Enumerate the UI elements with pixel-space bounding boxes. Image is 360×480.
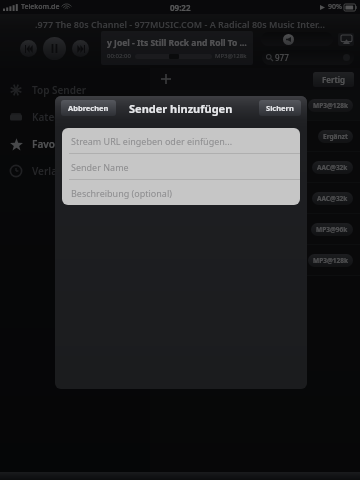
staticText <box>157 130 314 142</box>
staticText <box>157 192 308 204</box>
button[interactable]: Sender Name <box>62 154 300 179</box>
staticText: .977 The 80s Channel - 977MUSIC.COM - A … <box>35 18 325 30</box>
staticText: y Joel - Its Still Rock and Roll To Me (… <box>107 37 247 49</box>
staticText: Stream URL eingeben oder einfügen... <box>71 135 233 147</box>
staticText: MP3@96k <box>316 225 348 234</box>
staticText: Ergänzt <box>323 132 348 141</box>
staticText: .977 The 80s Channel - 977MUSIC.COM - A … <box>157 99 304 111</box>
button[interactable]: Kategorien <box>0 103 150 130</box>
staticText: MP3@128k <box>313 256 348 265</box>
button[interactable]: Ergänzt <box>150 121 360 151</box>
staticText: Beschreibung (optional) <box>71 187 172 199</box>
button[interactable]: Top Sender <box>0 76 150 103</box>
button[interactable]: .977 The 80s Channel - 977MUSIC.COM - A … <box>150 90 360 120</box>
staticText: AAC@32k <box>317 194 348 203</box>
staticText: 90% <box>328 2 342 12</box>
button[interactable]: AirPlay <box>338 33 354 46</box>
staticText: Top Sender <box>32 83 87 97</box>
button[interactable]: MP3@96k <box>150 214 360 244</box>
button[interactable]: Pause <box>43 37 66 60</box>
staticText: 09:22 <box>170 2 191 13</box>
button[interactable]: AAC@32k <box>150 152 360 182</box>
button[interactable] <box>261 32 333 46</box>
button[interactable]: Next <box>72 40 89 57</box>
button[interactable]: Sichern <box>259 100 301 116</box>
staticText: MP3@128k <box>215 52 247 60</box>
staticText: Sichern <box>266 103 294 113</box>
button[interactable]: 977 <box>262 50 354 65</box>
staticText: 00:02:00 <box>107 52 131 60</box>
button[interactable]: Trance, Ho... <box>150 245 360 275</box>
button[interactable]: Previous <box>20 40 37 57</box>
staticText: MP3@128k <box>313 101 348 110</box>
button[interactable]: y Joel - Its Still Rock and Roll To Me (… <box>101 31 253 65</box>
staticText <box>157 161 308 173</box>
staticText: Sender hinzufügen <box>129 101 233 116</box>
staticText: Abbrechen <box>68 103 109 113</box>
button[interactable]: Favoriten <box>0 130 150 157</box>
button[interactable]: Verlauf <box>0 157 150 184</box>
staticText: Kategorien <box>32 110 87 124</box>
staticText: Fertig <box>322 74 345 85</box>
staticText: Favoriten <box>32 137 79 151</box>
staticText: 977 <box>275 52 289 63</box>
staticText: AAC@32k <box>317 163 348 172</box>
staticText: Sender Name <box>71 161 129 173</box>
button[interactable]: Stream URL eingeben oder einfügen... <box>62 128 300 153</box>
button[interactable]: Abbrechen <box>61 100 116 116</box>
button[interactable]: Add station <box>159 72 173 86</box>
staticText: Verlauf <box>32 164 68 178</box>
button[interactable]: AAC@32k <box>150 183 360 213</box>
button[interactable]: Fertig <box>313 72 354 87</box>
staticText: Telekom.de <box>21 2 60 12</box>
button[interactable]: Beschreibung (optional) <box>62 180 300 205</box>
